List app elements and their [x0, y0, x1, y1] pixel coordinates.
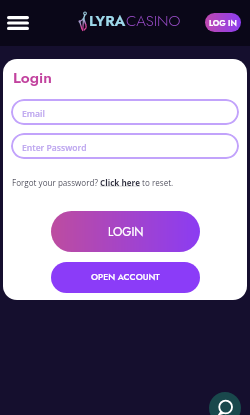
button[interactable]: OPEN ACCOUNT [51, 262, 200, 293]
button[interactable]: LOGIN [51, 211, 200, 252]
button[interactable]: Enter Password [11, 133, 239, 159]
button[interactable]: Open chat [209, 392, 241, 415]
staticText: Forgot your password? Click here to rese… [12, 177, 174, 188]
staticText: Email [22, 108, 45, 120]
button[interactable]: Email [11, 99, 239, 125]
staticText: LYRA [89, 10, 126, 32]
staticText: Login [13, 66, 52, 88]
staticText: CASINO [126, 10, 181, 32]
staticText: Enter Password [22, 142, 87, 154]
button[interactable]: LOG IN [205, 13, 241, 32]
staticText: LOGIN [108, 223, 144, 240]
staticText: LOG IN [209, 17, 237, 29]
button[interactable]: Menu [6, 12, 30, 34]
staticText: OPEN ACCOUNT [91, 271, 160, 284]
